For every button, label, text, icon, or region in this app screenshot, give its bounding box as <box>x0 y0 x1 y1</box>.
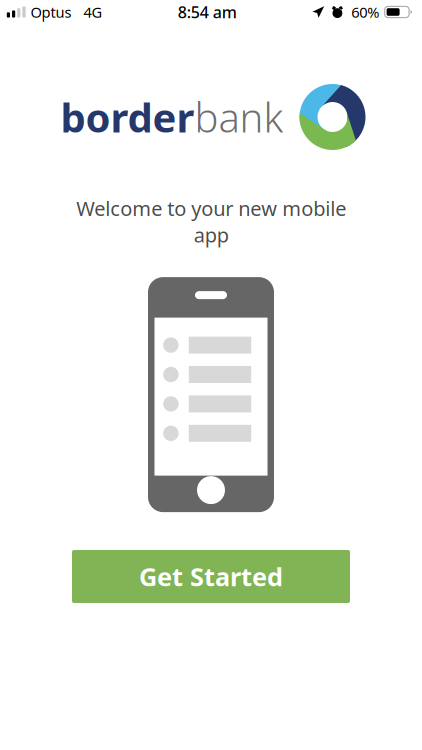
staticText: border <box>60 90 194 143</box>
staticText: Optus <box>31 2 72 22</box>
staticText: 4G <box>84 2 103 22</box>
staticText: bank <box>194 90 283 143</box>
staticText: Welcome to your new mobile app <box>76 195 346 248</box>
button[interactable]: Get Started <box>72 550 350 603</box>
staticText: Get Started <box>139 560 283 593</box>
staticText: 60% <box>351 2 379 22</box>
staticText: 8:54 am <box>178 1 237 23</box>
